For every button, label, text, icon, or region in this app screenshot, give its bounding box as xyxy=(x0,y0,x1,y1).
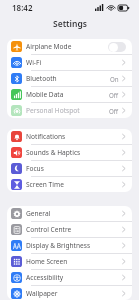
button[interactable]: General xyxy=(7,206,132,221)
button[interactable]: Mobile Data xyxy=(7,87,132,102)
staticText: Wi-Fi xyxy=(26,58,122,67)
button[interactable]: Display & Brightness xyxy=(7,238,132,253)
staticText: Off xyxy=(109,107,119,115)
staticText: Focus xyxy=(26,164,122,173)
button[interactable]: Personal Hotspot xyxy=(7,103,132,118)
staticText: Wallpaper xyxy=(26,289,122,298)
staticText: Bluetooth xyxy=(26,74,110,83)
staticText: General xyxy=(26,209,122,218)
staticText: Off xyxy=(109,91,119,99)
button[interactable]: Wallpaper xyxy=(7,286,132,300)
other: Airplane Mode toggle xyxy=(108,42,126,52)
button[interactable]: Bluetooth xyxy=(7,71,132,86)
staticText: Sounds & Haptics xyxy=(26,148,122,157)
staticText: On xyxy=(110,75,119,83)
button[interactable]: Sounds & Haptics xyxy=(7,145,132,160)
button[interactable]: Screen Time xyxy=(7,177,132,192)
button[interactable]: Accessibility xyxy=(7,270,132,285)
staticText: Screen Time xyxy=(26,180,122,189)
staticText: Personal Hotspot xyxy=(26,106,109,115)
staticText: Accessibility xyxy=(26,273,122,282)
staticText: Home Screen xyxy=(26,257,122,266)
staticText: Settings xyxy=(53,18,87,30)
button[interactable]: Airplane Mode xyxy=(7,39,132,54)
staticText: Control Centre xyxy=(26,225,122,234)
staticText: 18:42 xyxy=(12,2,33,13)
button[interactable]: Notifications xyxy=(7,129,132,144)
button[interactable]: Focus xyxy=(7,161,132,176)
staticText: Mobile Data xyxy=(26,90,109,99)
staticText: Airplane Mode xyxy=(26,42,108,51)
button[interactable]: Control Centre xyxy=(7,222,132,237)
button[interactable]: Wi-Fi xyxy=(7,55,132,70)
button[interactable]: Home Screen xyxy=(7,254,132,269)
staticText: Display & Brightness xyxy=(26,241,122,250)
staticText: Notifications xyxy=(26,132,122,141)
